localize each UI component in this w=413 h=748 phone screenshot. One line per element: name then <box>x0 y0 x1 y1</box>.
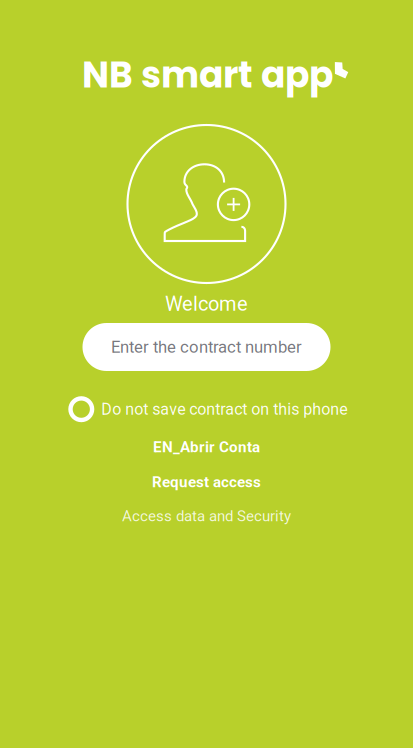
button[interactable]: EN_Abrir Conta <box>106 434 306 460</box>
button[interactable]: Do not save contract on this phone <box>68 394 349 424</box>
staticText: EN_Abrir Conta <box>153 438 260 456</box>
staticText: Do not save contract on this phone <box>101 400 347 419</box>
staticText: Welcome <box>165 292 248 316</box>
staticText: NB smart app <box>82 50 333 100</box>
button[interactable]: Request access <box>106 469 306 495</box>
button[interactable]: Access data and Security <box>96 503 316 529</box>
button[interactable]: Enter the contract number <box>82 323 330 371</box>
staticText: Access data and Security <box>122 507 291 525</box>
staticText: Enter the contract number <box>111 337 302 357</box>
staticText: Request access <box>152 473 261 491</box>
